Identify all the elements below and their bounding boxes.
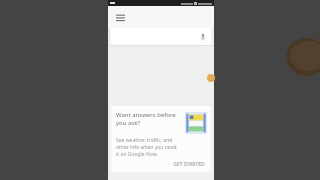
- button[interactable]: Voice search: [111, 28, 211, 45]
- button[interactable]: Want answers before you ask?: [111, 106, 211, 172]
- button[interactable]: Voice search: [197, 31, 208, 42]
- staticText: Want answers before you ask?: [116, 111, 182, 127]
- button[interactable]: GET STARTED: [170, 159, 208, 170]
- staticText: GET STARTED: [173, 161, 205, 168]
- button[interactable]: Open navigation menu: [112, 9, 128, 25]
- staticText: See weather, traffic, and other info whe…: [116, 137, 180, 158]
